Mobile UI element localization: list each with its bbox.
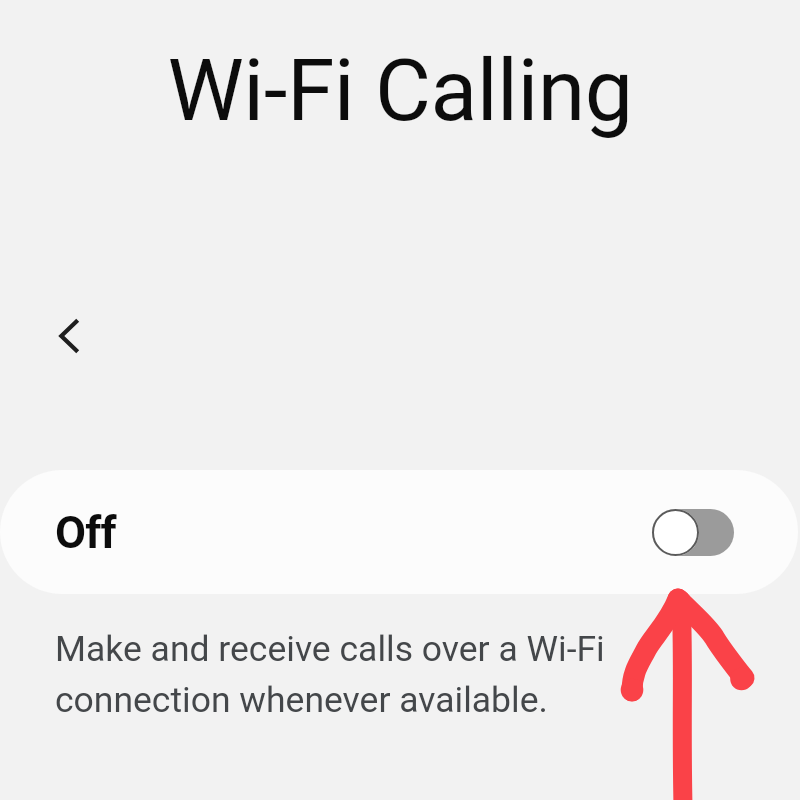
- staticText: connection whenever available.: [55, 679, 548, 721]
- staticText: Make and receive calls over a Wi-Fi: [55, 628, 605, 670]
- button[interactable]: Off: [0, 470, 798, 594]
- button[interactable]: Wi-Fi Calling: [0, 40, 800, 141]
- button[interactable]: Navigate up: [27, 294, 111, 378]
- staticText: Off: [55, 506, 116, 559]
- button[interactable]: Wi-Fi Calling, off: [652, 509, 734, 556]
